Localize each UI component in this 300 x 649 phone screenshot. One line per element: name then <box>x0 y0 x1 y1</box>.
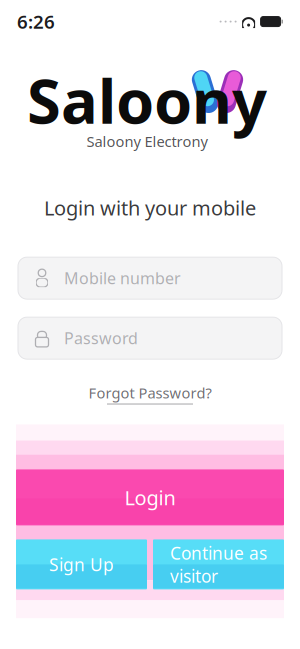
staticText: Saloony <box>27 59 267 140</box>
staticText: Mobile number <box>64 267 181 289</box>
staticText: 6:26 <box>17 9 55 34</box>
staticText: Login with your mobile <box>44 195 256 221</box>
staticText: Continue as visitor <box>170 541 267 587</box>
button[interactable]: Login <box>16 469 284 525</box>
staticText: Saloony Electrony <box>86 132 207 151</box>
button[interactable]: Forgot Password? <box>78 379 221 408</box>
staticText: Password <box>64 327 138 349</box>
button[interactable]: Sign Up <box>16 539 147 589</box>
staticText: Sign Up <box>49 553 114 576</box>
button[interactable]: Continue as visitor <box>153 539 284 589</box>
staticText: Login <box>124 484 175 511</box>
staticText: Forgot Password? <box>88 383 211 403</box>
